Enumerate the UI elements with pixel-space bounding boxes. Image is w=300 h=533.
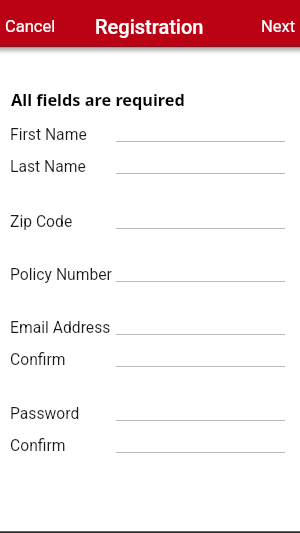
staticText: Cancel: [5, 17, 56, 36]
button[interactable]: Zip Code: [0, 201, 300, 234]
staticText: Policy Number: [10, 265, 112, 283]
staticText: Password: [10, 404, 80, 422]
staticText: Confirm: [10, 436, 66, 454]
staticText: Zip Code: [10, 212, 73, 230]
button[interactable]: Cancel: [0, 11, 64, 42]
other: System navigation bar: [0, 531, 300, 533]
staticText: Next: [261, 17, 296, 36]
button[interactable]: Email Address: [0, 307, 300, 340]
button[interactable]: Next: [253, 11, 300, 42]
button[interactable]: Last Name: [0, 146, 300, 179]
button[interactable]: Policy Number: [0, 254, 300, 287]
staticText: Confirm: [10, 350, 66, 368]
staticText: All fields are required: [11, 89, 185, 111]
button[interactable]: Confirm: [0, 339, 300, 372]
button[interactable]: First Name: [0, 114, 300, 147]
staticText: First Name: [10, 125, 87, 143]
staticText: Registration: [95, 15, 204, 38]
button[interactable]: Confirm: [0, 425, 300, 458]
button[interactable]: Password: [0, 393, 300, 426]
staticText: Last Name: [10, 157, 86, 175]
staticText: Email Address: [10, 318, 111, 336]
